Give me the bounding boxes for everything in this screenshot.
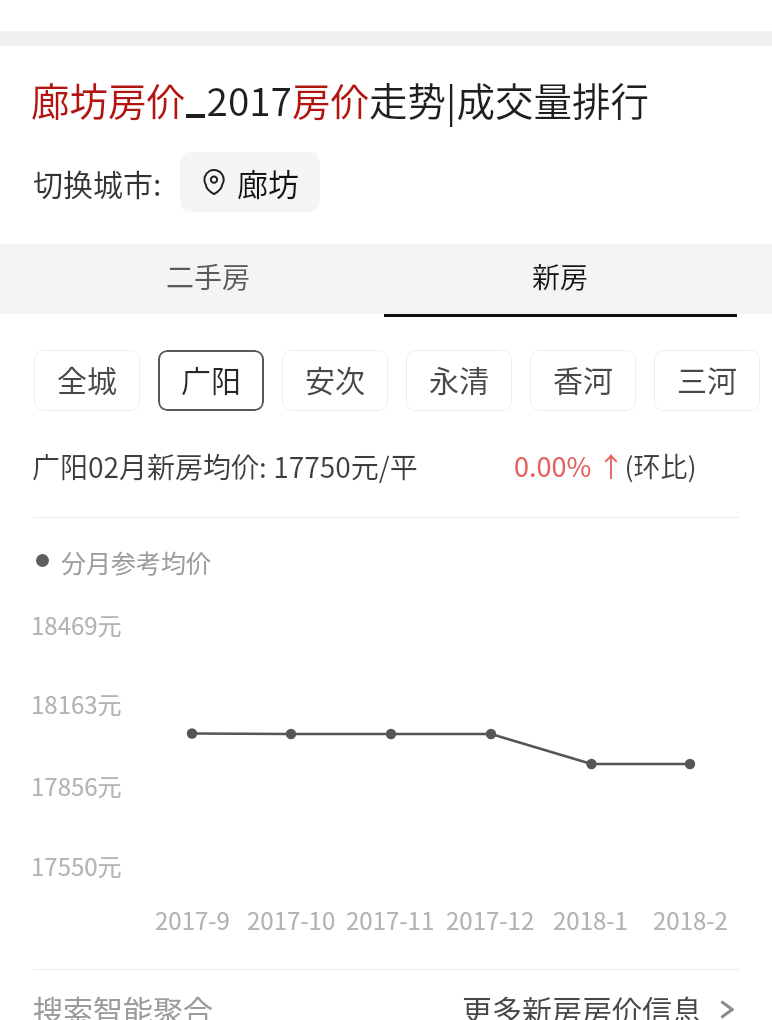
staticText: 18469元 [31,607,122,642]
staticText: 香河 [553,357,613,400]
button[interactable]: 全城 [34,350,140,411]
button[interactable]: 永清 [406,350,512,411]
staticText: 2017-12 [446,902,535,937]
staticText: 新房 [532,256,589,297]
staticText: 分月参考均价 [61,544,212,580]
staticText: 搜索智能聚合 [33,987,213,1020]
staticText: 0.00% ↑(环比) [514,446,697,485]
staticText: 安次 [305,357,365,400]
staticText: 更多新房房价信息 [462,987,702,1020]
button[interactable]: 安次 [282,350,388,411]
staticText: 17856元 [31,768,122,803]
staticText: 17550元 [31,848,122,883]
staticText: 全城 [57,357,117,400]
other: Location [201,169,227,195]
staticText: 廊坊 [237,160,299,205]
button[interactable]: 三河 [654,350,760,411]
staticText: 三河 [677,357,737,400]
staticText: 广阳02月新房均价: 17750元/平 [32,446,418,487]
staticText: 2017-10 [247,902,336,937]
staticText: 廊坊房价_2017房价走势|成交量排行 [31,71,649,127]
staticText: 2018-1 [553,902,628,937]
staticText: 二手房 [166,256,251,297]
staticText: 2017-9 [155,902,230,937]
button[interactable]: 香河 [530,350,636,411]
staticText: 18163元 [31,686,122,721]
button[interactable]: 广阳 [158,350,264,411]
staticText: 广阳 [181,357,241,400]
staticText: 2017-11 [346,902,435,937]
staticText: 2018-2 [653,902,728,937]
staticText: 切换城市: [33,161,162,204]
button[interactable]: 二手房 [32,244,384,314]
staticText: 永清 [429,357,489,400]
button[interactable]: Location [180,152,320,212]
button[interactable]: 新房 [384,244,737,314]
button[interactable]: 更多新房房价信息 [462,987,740,1020]
